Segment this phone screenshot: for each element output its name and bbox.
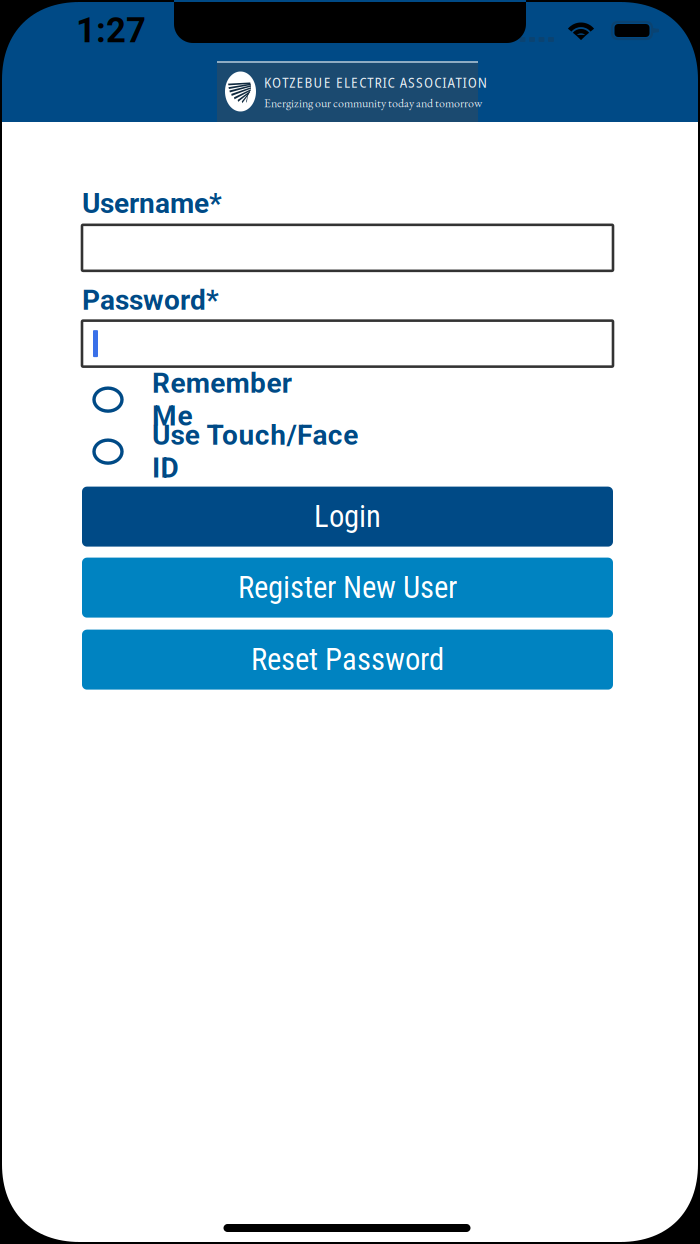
staticText: Register New User: [238, 570, 457, 606]
button[interactable]: Register New User: [82, 558, 613, 618]
staticText: Use Touch/Face ID: [152, 419, 358, 484]
staticText: Energizing our community today and tomor…: [264, 95, 482, 111]
staticText: 1:27: [76, 10, 146, 51]
button[interactable]: Use Touch/Face ID: [82, 426, 613, 478]
button[interactable]: Remember Me: [82, 374, 613, 426]
staticText: Reset Password: [251, 642, 444, 678]
staticText: Login: [314, 499, 381, 535]
button[interactable]: Reset Password: [82, 630, 613, 690]
staticText: KOTZEBUE ELECTRIC ASSOCIATION: [264, 72, 487, 92]
staticText: Username*: [82, 187, 222, 220]
button[interactable]: Login: [82, 487, 613, 547]
staticText: Remember Me: [152, 367, 292, 432]
staticText: Password*: [82, 284, 219, 317]
